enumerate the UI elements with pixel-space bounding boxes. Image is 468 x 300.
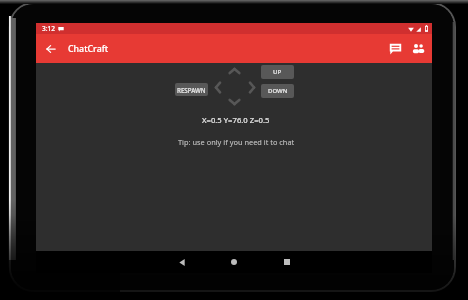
staticText: Tip: use only if you need it to chat	[178, 137, 295, 147]
staticText: RESPAWN	[177, 86, 206, 94]
button[interactable]: Turn right	[243, 79, 259, 95]
button[interactable]: RESPAWN	[175, 83, 208, 96]
button[interactable]: UP	[261, 65, 294, 79]
button[interactable]: DOWN	[261, 84, 294, 98]
button[interactable]: Back	[36, 34, 65, 63]
button[interactable]: Home	[224, 252, 244, 272]
button[interactable]: Move forward	[226, 63, 242, 79]
staticText: X=0.5 Y=76.0 Z=0.5	[202, 115, 270, 125]
staticText: UP	[273, 68, 282, 76]
button[interactable]: Back	[172, 252, 192, 272]
staticText: 3:12	[42, 24, 55, 33]
button[interactable]: Recents	[277, 252, 297, 272]
staticText: DOWN	[268, 87, 288, 95]
button[interactable]: Move back	[226, 93, 242, 109]
button[interactable]: Turn left	[210, 79, 226, 95]
staticText: ChatCraft	[68, 43, 109, 55]
button[interactable]: Chat	[384, 34, 407, 63]
button[interactable]: Players	[407, 34, 430, 63]
